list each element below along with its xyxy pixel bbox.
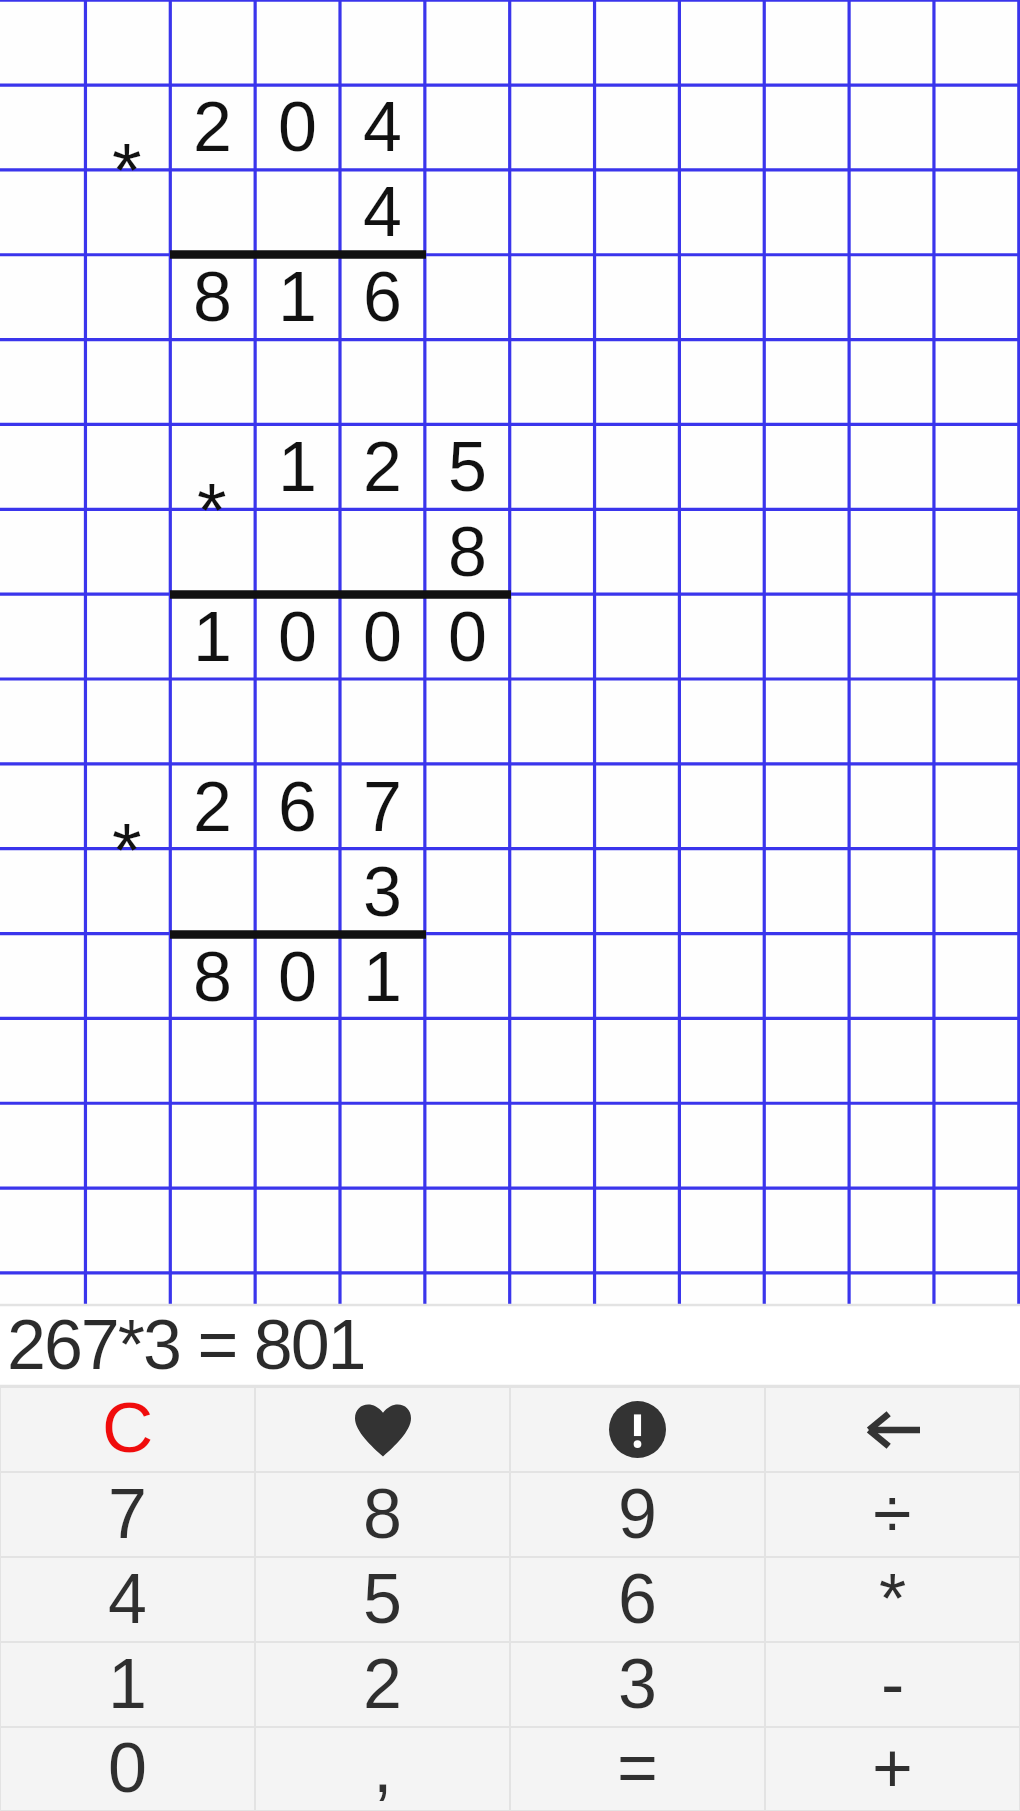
button[interactable]: * <box>766 1558 1019 1641</box>
staticText: 8 <box>448 513 487 591</box>
staticText: 7 <box>108 1475 147 1553</box>
button[interactable]: 267*3 = 801 <box>0 1304 1020 1387</box>
button[interactable]: + <box>766 1728 1019 1810</box>
staticText: 0 <box>448 598 487 676</box>
button[interactable]: 8 <box>256 1473 509 1556</box>
staticText: 4 <box>363 173 402 251</box>
button[interactable]: 3 <box>511 1643 764 1726</box>
staticText: 0 <box>278 88 317 166</box>
button[interactable]: , <box>256 1728 509 1810</box>
staticText: * <box>879 1560 907 1638</box>
staticText: 6 <box>618 1560 657 1638</box>
button[interactable]: C <box>1 1388 254 1471</box>
staticText: 1 <box>108 1645 147 1723</box>
staticText: * <box>197 467 227 552</box>
staticText: 8 <box>363 1475 402 1553</box>
staticText: 1 <box>193 598 232 676</box>
staticText: 1 <box>278 428 317 506</box>
staticText: 9 <box>618 1475 657 1553</box>
other: Backspace <box>866 1403 920 1457</box>
button[interactable]: Info <box>511 1388 764 1471</box>
staticText: C <box>102 1388 154 1467</box>
button[interactable]: - <box>766 1643 1019 1726</box>
staticText: = <box>617 1729 658 1807</box>
staticText: ÷ <box>873 1475 912 1553</box>
staticText: 2 <box>363 428 402 506</box>
staticText: 1 <box>278 258 317 336</box>
staticText: * <box>112 127 142 212</box>
staticText: 6 <box>278 768 317 846</box>
staticText: 3 <box>618 1645 657 1723</box>
staticText: 5 <box>363 1560 402 1638</box>
button[interactable]: Favorite <box>256 1388 509 1471</box>
button[interactable]: 1 <box>1 1643 254 1726</box>
button[interactable]: 5 <box>256 1558 509 1641</box>
staticText: 267*3 = 801 <box>7 1306 365 1384</box>
staticText: 2 <box>193 768 232 846</box>
button[interactable]: 9 <box>511 1473 764 1556</box>
staticText: 8 <box>193 938 232 1016</box>
button[interactable]: ÷ <box>766 1473 1019 1556</box>
staticText: 4 <box>108 1560 147 1638</box>
staticText: 2 <box>363 1645 402 1723</box>
staticText: 7 <box>363 768 402 846</box>
staticText: + <box>872 1729 913 1807</box>
staticText: 0 <box>278 938 317 1016</box>
staticText: 6 <box>363 258 402 336</box>
staticText: 5 <box>448 428 487 506</box>
button[interactable]: 2 <box>256 1643 509 1726</box>
button[interactable]: 4 <box>1 1558 254 1641</box>
button[interactable]: Backspace <box>766 1388 1019 1471</box>
staticText: * <box>112 807 142 892</box>
staticText: 2 <box>193 88 232 166</box>
staticText: 4 <box>363 88 402 166</box>
staticText: 0 <box>363 598 402 676</box>
staticText: 0 <box>278 598 317 676</box>
button[interactable]: 0 <box>1 1728 254 1810</box>
staticText: 8 <box>193 258 232 336</box>
other: Favorite <box>355 1401 411 1457</box>
staticText: 0 <box>108 1729 147 1807</box>
staticText: 1 <box>363 938 402 1016</box>
button[interactable]: = <box>511 1728 764 1810</box>
staticText: , <box>373 1729 393 1807</box>
button[interactable]: 7 <box>1 1473 254 1556</box>
staticText: - <box>881 1645 905 1723</box>
other: Info <box>609 1401 666 1458</box>
button[interactable]: 6 <box>511 1558 764 1641</box>
staticText: 3 <box>363 853 402 931</box>
